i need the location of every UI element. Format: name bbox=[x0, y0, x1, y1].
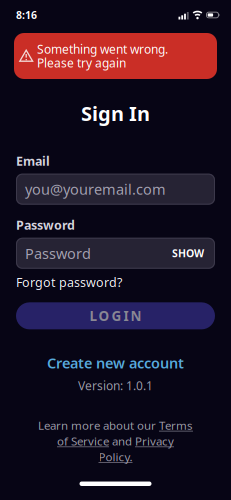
staticText: Policy. bbox=[98, 449, 132, 464]
button[interactable]: you@youremail.com bbox=[16, 174, 215, 205]
staticText: Learn more about our Terms bbox=[38, 417, 193, 433]
button[interactable]: Password bbox=[16, 238, 215, 269]
staticText: Password bbox=[16, 217, 75, 233]
staticText: Something went wrong. bbox=[37, 41, 168, 57]
staticText: Password bbox=[25, 244, 91, 263]
button[interactable]: Something went wrong. bbox=[14, 33, 217, 79]
staticText: SHOW bbox=[172, 246, 204, 260]
button[interactable]: Learn more about our Terms bbox=[38, 417, 193, 464]
staticText: Version: 1.0.1 bbox=[78, 378, 153, 393]
staticText: you@youremail.com bbox=[25, 179, 166, 199]
button[interactable]: Forgot password? bbox=[16, 274, 122, 290]
staticText: Email bbox=[16, 153, 50, 169]
staticText: Forgot password? bbox=[16, 274, 122, 290]
staticText: LOGIN bbox=[89, 307, 141, 325]
button[interactable]: Create new account bbox=[47, 353, 184, 373]
staticText: Please try again bbox=[37, 55, 126, 71]
staticText: Create new account bbox=[47, 353, 184, 373]
button[interactable]: LOGIN bbox=[16, 302, 215, 329]
staticText: 8:16 bbox=[16, 8, 37, 22]
staticText: Sign In bbox=[81, 100, 150, 127]
staticText: of Service and Privacy bbox=[57, 433, 174, 449]
